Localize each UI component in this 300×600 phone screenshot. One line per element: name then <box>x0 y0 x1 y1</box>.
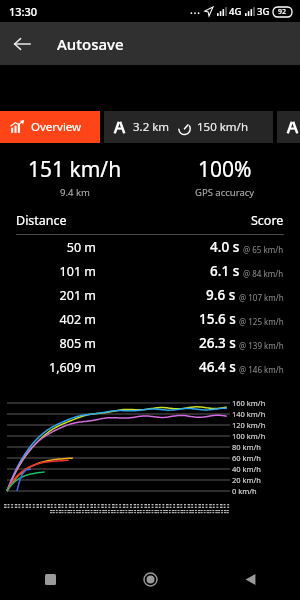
button[interactable]: Back <box>0 22 43 65</box>
staticText: 9.4 km <box>60 186 90 199</box>
staticText: 100 km/h <box>232 431 266 441</box>
staticText: Score <box>251 212 284 229</box>
staticText: Distance <box>16 212 67 229</box>
staticText: 15.6 s <box>199 310 236 328</box>
button[interactable]: 50 m <box>16 235 284 259</box>
staticText: 0 km/h <box>232 486 257 496</box>
button[interactable]: Back <box>200 558 300 600</box>
staticText: 20 km/h <box>232 475 261 485</box>
button[interactable]: Overview <box>0 111 100 143</box>
staticText: 3.2 km <box>133 119 170 135</box>
button[interactable]: 805 m <box>16 331 284 355</box>
button[interactable]: 3.2 km <box>104 111 273 143</box>
staticText: 201 m <box>16 287 96 304</box>
staticText: GPS accuracy <box>195 186 255 199</box>
staticText: 80 km/h <box>232 442 261 452</box>
staticText: 805 m <box>16 335 96 352</box>
button[interactable]: Home <box>100 558 200 600</box>
staticText: 13:30 <box>9 4 38 19</box>
staticText: @ 107 km/h <box>239 292 284 303</box>
staticText: 9.6 s <box>206 286 236 304</box>
staticText: 4.0 s <box>210 238 240 256</box>
staticText: 1,609 m <box>16 359 96 376</box>
staticText: 151 km/h <box>28 155 122 184</box>
staticText: 150 km/h <box>197 119 249 135</box>
staticText: 101 m <box>16 263 96 280</box>
staticText: @ 84 km/h <box>243 268 284 279</box>
staticText: 40 km/h <box>232 464 261 474</box>
staticText: 4G <box>229 5 242 18</box>
staticText: 46.4 s <box>199 358 236 376</box>
button[interactable]: Recent apps <box>0 558 100 600</box>
button[interactable]: 1,609 m <box>16 355 284 379</box>
button[interactable]: 402 m <box>16 307 284 331</box>
staticText: 3G <box>257 5 270 18</box>
staticText: @ 125 km/h <box>239 316 284 327</box>
staticText: 26.3 s <box>199 334 236 352</box>
staticText: 120 km/h <box>232 420 266 430</box>
staticText: @ 65 km/h <box>243 244 284 255</box>
button[interactable]: 101 m <box>16 259 284 283</box>
staticText: Autosave <box>57 34 124 54</box>
staticText: 140 km/h <box>232 409 266 419</box>
staticText: 92 <box>278 7 287 17</box>
staticText: 6.1 s <box>210 262 240 280</box>
staticText: @ 146 km/h <box>239 364 284 375</box>
staticText: 402 m <box>16 311 96 328</box>
staticText: 100% <box>198 155 252 184</box>
button[interactable]: More results <box>277 111 300 143</box>
staticText: @ 139 km/h <box>239 340 284 351</box>
staticText: 160 km/h <box>232 398 266 408</box>
staticText: Overview <box>31 119 82 135</box>
staticText: 60 km/h <box>232 453 261 463</box>
staticText: 50 m <box>16 239 96 256</box>
button[interactable]: 201 m <box>16 283 284 307</box>
